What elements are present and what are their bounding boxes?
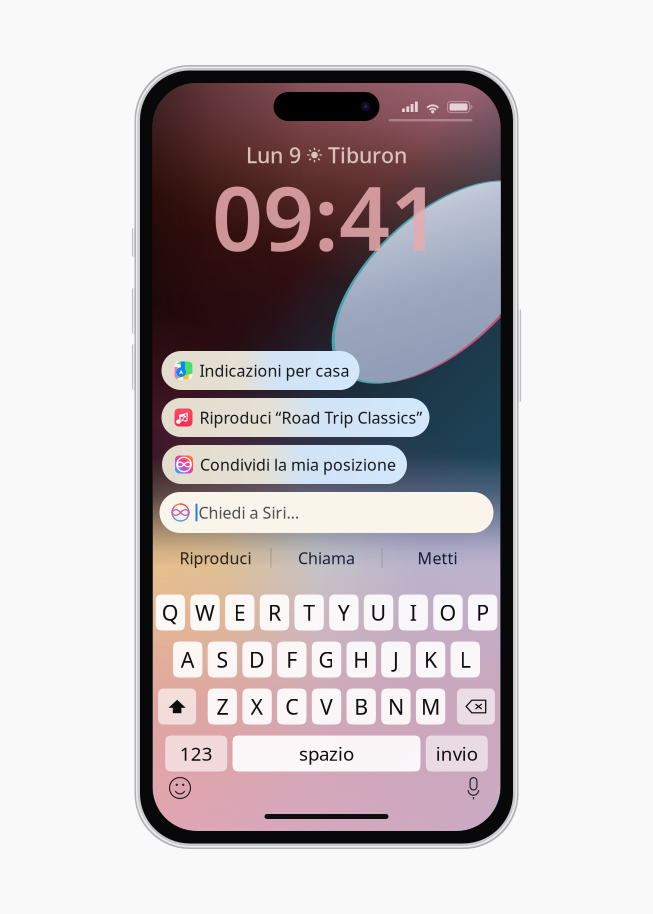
staticText: 09:41: [212, 157, 441, 275]
staticText: V: [320, 692, 333, 721]
button[interactable]: E: [225, 594, 254, 630]
staticText: T: [303, 598, 315, 627]
button[interactable]: Riproduci: [160, 541, 270, 575]
staticText: C: [285, 692, 298, 721]
staticText: D: [249, 645, 265, 674]
staticText: J: [393, 645, 399, 674]
button[interactable]: Indicazioni per casa: [161, 351, 359, 390]
staticText: spazio: [299, 741, 354, 766]
staticText: Metti: [417, 547, 457, 569]
staticText: Q: [162, 598, 179, 627]
staticText: S: [216, 645, 228, 674]
staticText: I: [410, 598, 417, 627]
staticText: Riproduci: [179, 547, 251, 569]
staticText: G: [318, 645, 334, 674]
button[interactable]: C: [277, 688, 306, 724]
staticText: 123: [180, 741, 213, 766]
button[interactable]: Condividi la mia posizione: [162, 445, 407, 484]
button[interactable]: U: [364, 594, 393, 630]
staticText: P: [476, 598, 489, 627]
button[interactable]: F: [277, 641, 306, 677]
staticText: O: [439, 598, 456, 627]
button[interactable]: X: [242, 688, 272, 724]
staticText: F: [286, 645, 297, 674]
staticText: Chiama: [298, 547, 355, 569]
staticText: Indicazioni per casa: [199, 360, 349, 381]
button[interactable]: J: [381, 641, 411, 677]
button[interactable]: K: [416, 641, 445, 677]
button[interactable]: V: [312, 688, 341, 724]
button[interactable]: Maiuscole: [158, 688, 196, 724]
button[interactable]: H: [346, 641, 376, 677]
button[interactable]: Q: [156, 594, 185, 630]
button[interactable]: Metti: [382, 541, 492, 575]
button[interactable]: W: [190, 594, 220, 630]
button[interactable]: G: [312, 641, 341, 677]
staticText: A: [181, 645, 195, 674]
button[interactable]: Cancella: [457, 688, 495, 724]
button[interactable]: S: [208, 641, 237, 677]
button[interactable]: D: [242, 641, 272, 677]
staticText: E: [234, 598, 246, 627]
button[interactable]: Chiedi a Siri…: [159, 492, 493, 533]
staticText: X: [251, 692, 264, 721]
button[interactable]: O: [433, 594, 463, 630]
button[interactable]: B: [346, 688, 376, 724]
staticText: L: [460, 645, 471, 674]
staticText: Riproduci “Road Trip Classics”: [199, 407, 422, 428]
button[interactable]: L: [451, 641, 480, 677]
button[interactable]: A: [173, 641, 202, 677]
staticText: K: [424, 645, 437, 674]
staticText: U: [370, 598, 386, 627]
button[interactable]: Z: [208, 688, 237, 724]
staticText: Chiedi a Siri…: [198, 502, 299, 523]
staticText: Y: [338, 598, 350, 627]
staticText: W: [195, 598, 215, 627]
staticText: R: [268, 598, 281, 627]
staticText: Z: [216, 692, 228, 721]
button[interactable]: Riproduci “Road Trip Classics”: [161, 398, 429, 437]
button[interactable]: I: [398, 594, 428, 630]
staticText: H: [353, 645, 369, 674]
button[interactable]: spazio: [232, 735, 420, 771]
button[interactable]: Emoji: [168, 776, 191, 799]
staticText: B: [354, 692, 368, 721]
staticText: N: [388, 692, 404, 721]
staticText: invio: [436, 741, 478, 766]
button[interactable]: R: [260, 594, 289, 630]
staticText: Tiburon: [328, 141, 407, 169]
button[interactable]: Chiama: [271, 541, 381, 575]
button[interactable]: Y: [329, 594, 358, 630]
staticText: Condividi la mia posizione: [200, 454, 396, 475]
staticText: Lun 9: [246, 141, 301, 169]
staticText: M: [421, 692, 440, 721]
button[interactable]: M: [416, 688, 445, 724]
button[interactable]: Dettatura: [462, 776, 484, 800]
button[interactable]: invio: [426, 735, 488, 771]
button[interactable]: P: [468, 594, 497, 630]
button[interactable]: 123: [165, 735, 227, 771]
button[interactable]: T: [294, 594, 324, 630]
button[interactable]: N: [381, 688, 411, 724]
